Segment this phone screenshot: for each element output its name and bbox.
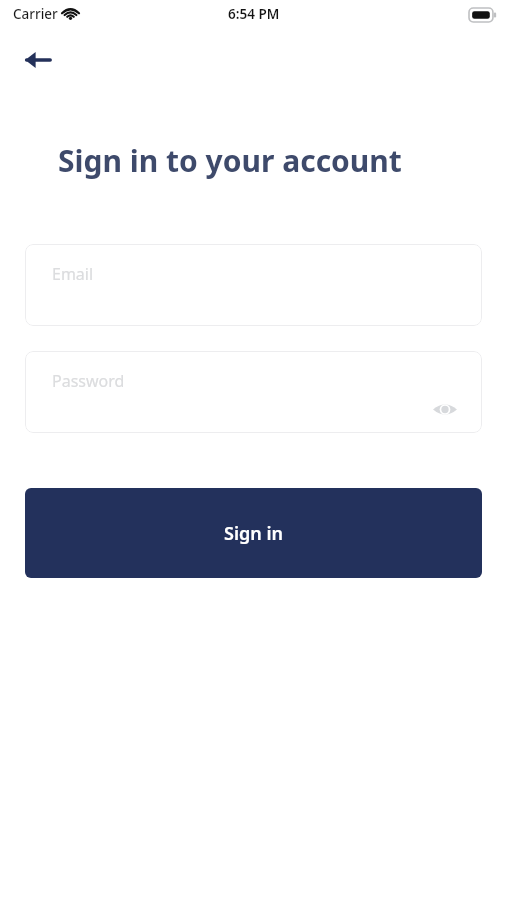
- staticText: Sign in: [224, 521, 284, 546]
- staticText: Carrier: [13, 5, 58, 23]
- staticText: Email: [52, 263, 94, 285]
- button[interactable]: Back: [13, 36, 61, 84]
- button[interactable]: Password: [25, 351, 482, 433]
- button[interactable]: Show password: [425, 389, 465, 429]
- button[interactable]: Sign in: [25, 488, 482, 578]
- staticText: Password: [52, 370, 125, 392]
- button[interactable]: Email: [25, 244, 482, 326]
- staticText: Sign in to your account: [58, 140, 402, 181]
- staticText: 6:54 PM: [228, 5, 280, 23]
